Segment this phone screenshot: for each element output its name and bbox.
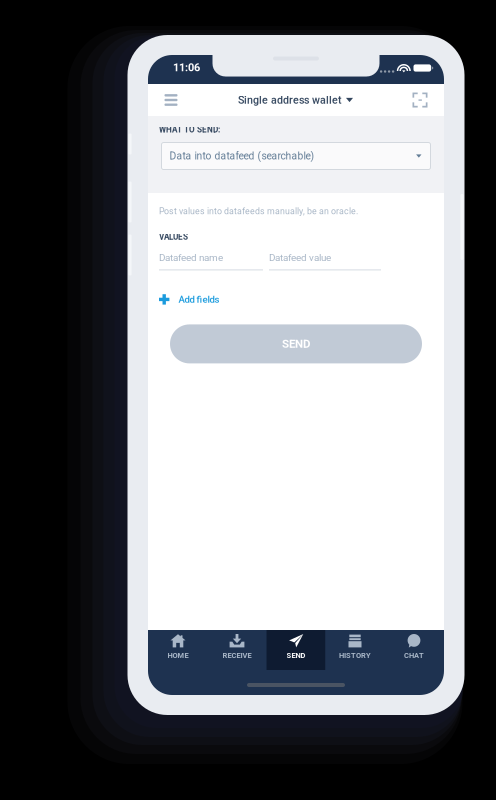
button[interactable]: CHAT <box>384 630 443 670</box>
staticText: Datafeed name <box>159 252 223 263</box>
staticText: WHAT TO SEND: <box>159 125 220 134</box>
button[interactable]: SEND <box>170 324 422 363</box>
staticText: VALUES <box>159 232 188 242</box>
button[interactable]: Add fields <box>159 292 219 306</box>
staticText: HISTORY <box>339 651 371 660</box>
staticText: Add fields <box>178 294 219 305</box>
staticText: CHAT <box>404 651 424 660</box>
button[interactable]: HISTORY <box>325 630 384 670</box>
staticText: RECEIVE <box>222 651 251 660</box>
button[interactable]: RECEIVE <box>207 630 266 670</box>
button[interactable]: SEND <box>266 630 325 670</box>
staticText: Datafeed value <box>269 252 331 263</box>
staticText: SEND <box>282 337 310 351</box>
staticText: Post values into datafeeds manually, be … <box>159 206 358 216</box>
button[interactable]: HOME <box>148 630 207 670</box>
staticText: SEND <box>286 651 305 660</box>
button[interactable]: Menu <box>156 84 186 116</box>
button[interactable]: Scan QR code <box>405 84 435 116</box>
staticText: 11:06 <box>173 61 200 74</box>
staticText: HOME <box>167 651 188 660</box>
staticText: Data into datafeed (searchable) <box>169 150 314 162</box>
button[interactable]: Data into datafeed (searchable) <box>161 142 430 169</box>
button[interactable]: Single address wallet <box>238 84 353 116</box>
staticText: Single address wallet <box>238 94 342 106</box>
